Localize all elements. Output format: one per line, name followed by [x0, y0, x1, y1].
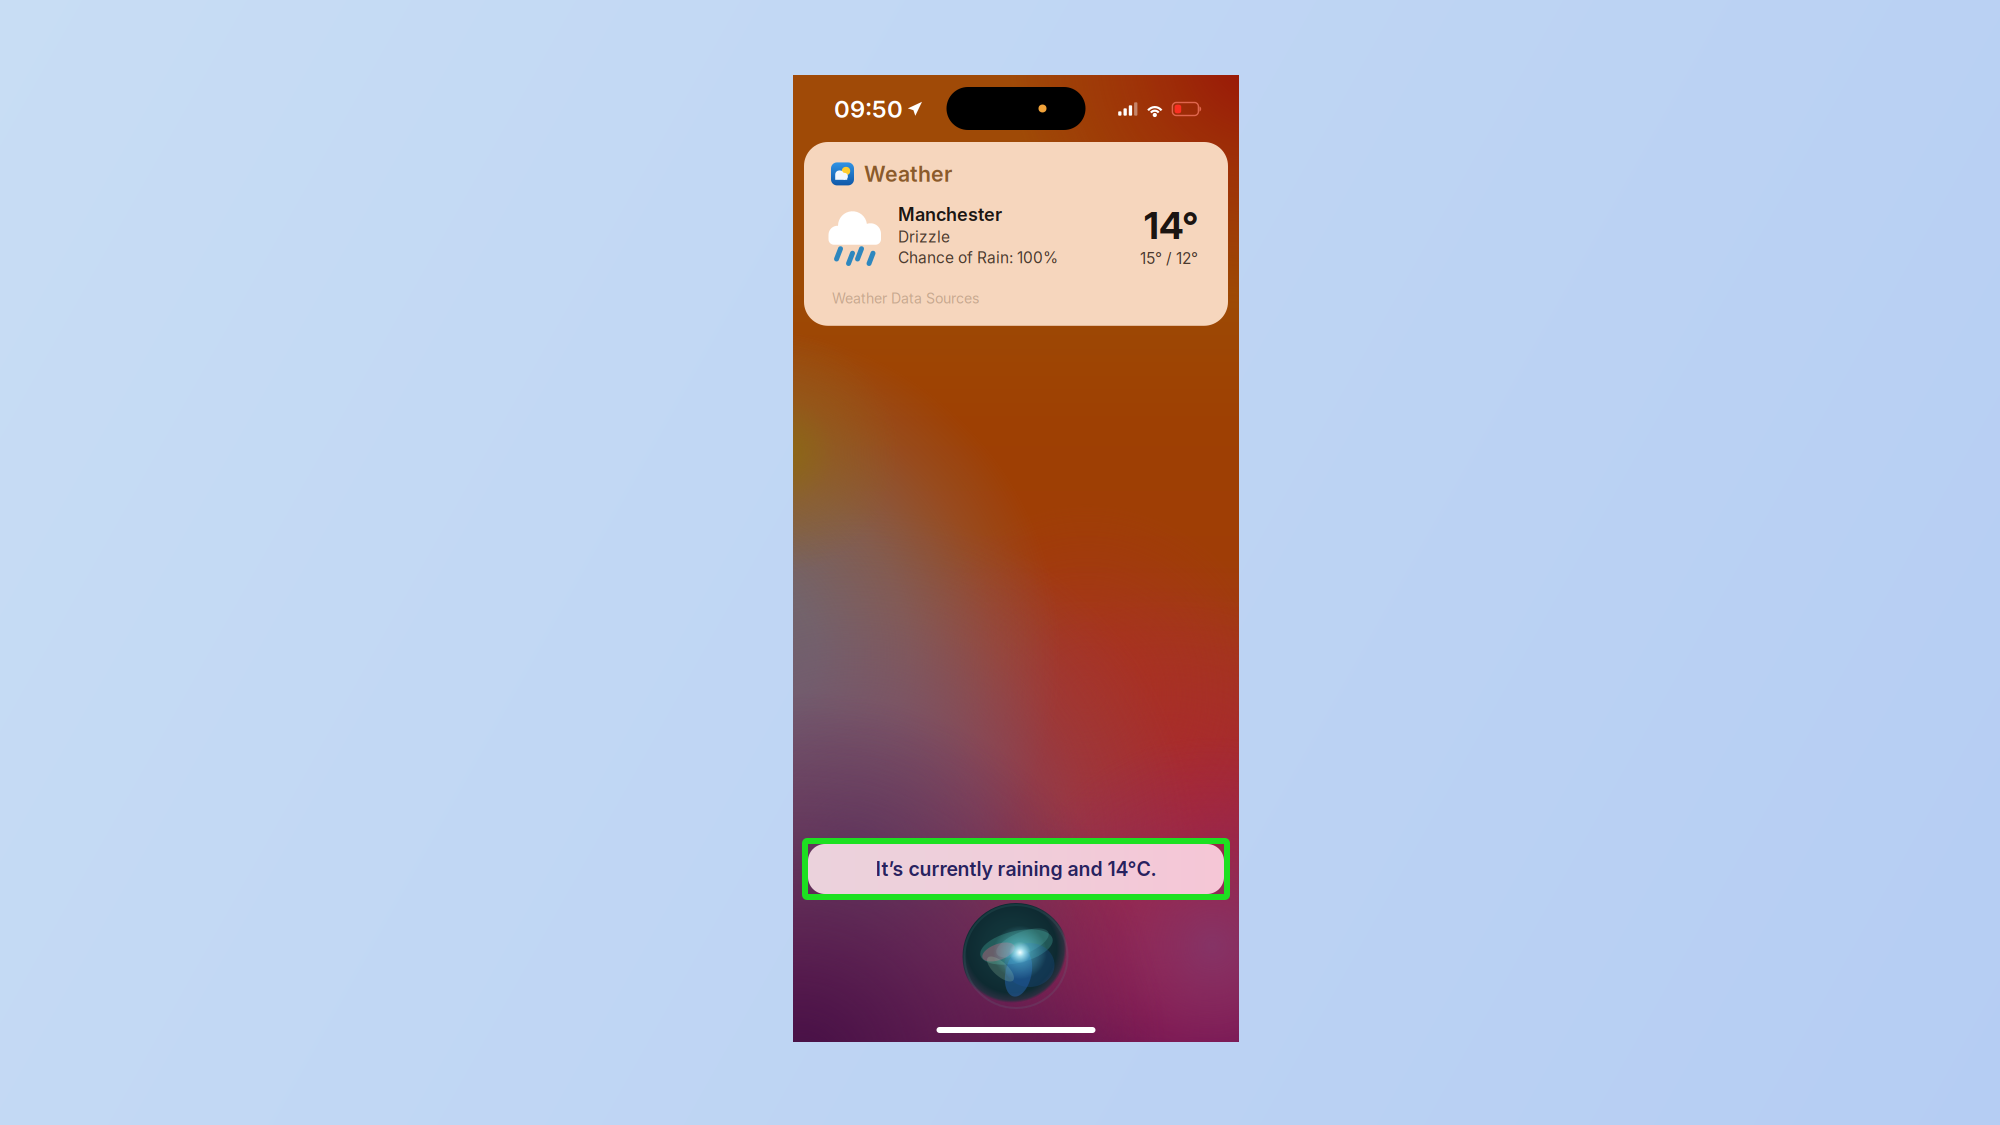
staticText: It’s currently raining and 14°C. [875, 857, 1156, 881]
staticText: 09:50 [834, 94, 903, 123]
staticText: Manchester [898, 204, 1002, 225]
staticText: Weather Data Sources [832, 290, 979, 307]
staticText: 15° / 12° [1140, 249, 1198, 268]
staticText: Weather [864, 161, 952, 187]
staticText: Drizzle [898, 227, 950, 246]
staticText: Chance of Rain: 100% [898, 248, 1058, 267]
staticText: 14° [1144, 203, 1198, 248]
button[interactable]: Weather [804, 142, 1228, 326]
button[interactable]: It’s currently raining and 14°C. [808, 844, 1224, 894]
